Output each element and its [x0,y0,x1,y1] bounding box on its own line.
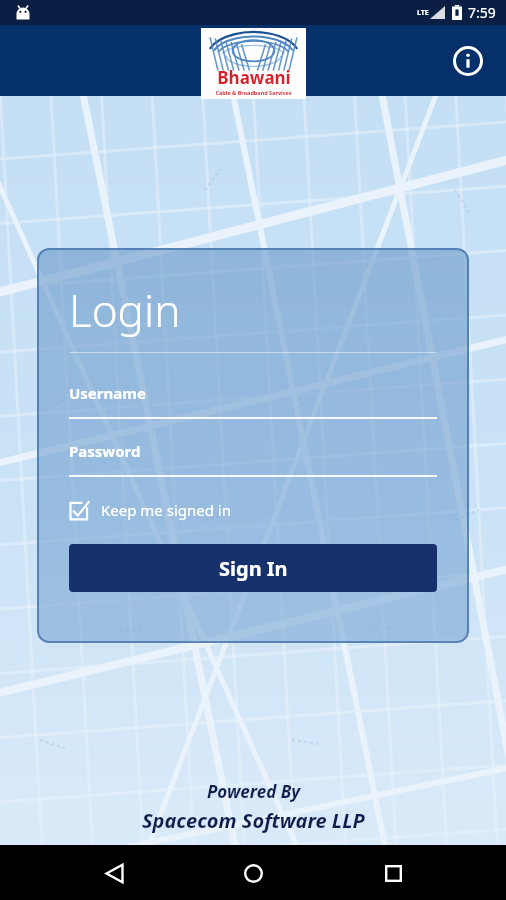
staticText: Sign In [219,555,288,582]
staticText: Cable & Broadband Services [215,89,292,96]
button[interactable]: Back [88,847,140,899]
button[interactable]: Sign In [69,544,437,592]
staticText: Login [69,280,181,340]
staticText: Spacecom Software LLP [142,807,365,834]
button[interactable]: Home [227,847,279,899]
staticText: LTE [417,8,429,18]
staticText: Keep me signed in [101,500,231,520]
button[interactable]: Info [448,41,488,81]
button[interactable]: Recent apps [367,847,419,899]
staticText: Bhawani [217,66,291,89]
staticText: Password [69,441,141,461]
staticText: 7:59 [468,3,496,22]
button[interactable]: Keep me signed in [69,499,437,520]
button[interactable]: Bhawani logo [201,28,306,99]
staticText: Powered By [207,780,301,803]
staticText: Username [69,383,146,403]
